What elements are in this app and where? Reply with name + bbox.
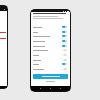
button[interactable] xyxy=(33,39,68,43)
button[interactable] xyxy=(33,30,68,34)
button[interactable] xyxy=(33,62,68,66)
button[interactable] xyxy=(33,74,68,79)
button[interactable] xyxy=(33,67,68,71)
button[interactable] xyxy=(33,48,68,52)
button[interactable] xyxy=(33,44,68,48)
button[interactable] xyxy=(33,58,68,62)
button[interactable] xyxy=(33,25,68,29)
button[interactable] xyxy=(33,53,68,57)
button[interactable] xyxy=(33,34,68,38)
